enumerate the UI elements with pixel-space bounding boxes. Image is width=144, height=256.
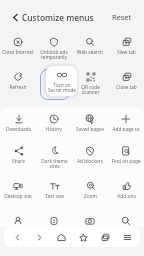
staticText: History <box>46 126 62 132</box>
button[interactable]: Home <box>52 228 70 246</box>
button[interactable]: Forward <box>30 228 48 246</box>
button[interactable]: Menu <box>118 228 136 246</box>
button[interactable]: Find on page <box>108 146 144 176</box>
staticText: Zoom <box>84 193 97 199</box>
button[interactable]: Web search <box>72 37 108 67</box>
button[interactable]: Unblock ads temporarily <box>36 37 72 67</box>
staticText: Find on page <box>111 158 141 164</box>
button[interactable]: Add-ons <box>108 181 144 211</box>
button[interactable]: Turn on Secret mode <box>46 66 77 96</box>
staticText: Customize menus <box>22 12 94 23</box>
button[interactable]: Dark theme sites <box>36 146 72 176</box>
button[interactable]: Bookmarks <box>74 228 92 246</box>
button[interactable]: Tabs <box>96 228 114 246</box>
button[interactable]: Zoom <box>72 181 108 211</box>
button[interactable]: Text size <box>36 181 72 211</box>
button[interactable]: Add page to <box>108 114 144 144</box>
staticText: Web search <box>77 49 103 55</box>
staticText: New tab <box>117 49 136 55</box>
button[interactable]: New tab <box>108 37 144 67</box>
button[interactable]: QR code scanner <box>72 72 108 102</box>
button[interactable] <box>36 216 72 246</box>
staticText: Close Internet <box>2 49 34 55</box>
button[interactable]: History <box>36 114 72 144</box>
staticText: Downloads <box>6 126 31 132</box>
button[interactable]: Navigate up <box>5 7 25 27</box>
button[interactable]: Downloads <box>0 114 36 144</box>
button[interactable] <box>72 216 108 246</box>
staticText: Turn on Secret mode <box>48 82 76 93</box>
staticText: Text size <box>45 193 64 199</box>
button[interactable]: Saved pages <box>72 114 108 144</box>
staticText: Dark theme sites <box>41 158 68 169</box>
button[interactable]: Share <box>0 146 36 176</box>
staticText: Unblock ads temporarily <box>40 49 68 60</box>
staticText: Desktop site <box>4 193 32 199</box>
staticText: QR code scanner <box>81 84 100 95</box>
staticText: Ad blockers <box>77 158 103 164</box>
button[interactable]: Close tab <box>108 72 144 102</box>
button[interactable] <box>0 216 36 246</box>
staticText: Add page to <box>112 126 140 132</box>
staticText: Share <box>12 158 25 164</box>
button[interactable]: Reset <box>110 9 134 25</box>
button[interactable]: Ad blockers <box>72 146 108 176</box>
button[interactable]: Refresh <box>0 72 36 102</box>
staticText: Reset <box>112 12 132 22</box>
staticText: Saved pages <box>76 126 104 132</box>
staticText: Add-ons <box>117 193 136 199</box>
button[interactable]: Back <box>8 228 26 246</box>
button[interactable] <box>36 72 72 102</box>
button[interactable]: Desktop site <box>0 181 36 211</box>
staticText: Close tab <box>116 84 137 90</box>
button[interactable]: Close Internet <box>0 37 36 67</box>
staticText: Refresh <box>9 84 27 90</box>
button[interactable] <box>108 216 144 246</box>
